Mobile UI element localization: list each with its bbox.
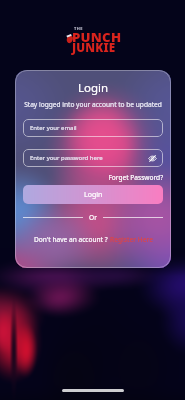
button[interactable]: Login [23,185,163,204]
staticText: Enter your password here [30,154,103,162]
staticText: Login [84,190,103,200]
staticText: THE [74,26,83,31]
staticText: Don't have an account ? [34,235,110,244]
button[interactable]: Register Here [110,235,153,244]
staticText: Login [15,80,171,96]
button[interactable]: Enter your password here [23,149,163,167]
staticText: Stay logged into your account to be upda… [15,100,171,109]
staticText: JUNKIE [72,38,116,56]
button[interactable]: Enter your email [23,119,163,137]
other: Show password [148,154,157,163]
staticText: Or [89,213,97,222]
staticText: PUNCH [72,28,122,46]
staticText: Enter your email [30,124,77,132]
button[interactable]: Forget Password? [15,173,163,182]
